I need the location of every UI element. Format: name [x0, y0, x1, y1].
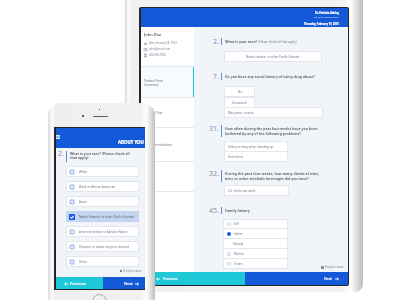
button[interactable]: Occasional	[224, 97, 255, 108]
staticText: Hispanic or Latino origin or descent	[79, 245, 130, 249]
staticText: Father	[234, 232, 243, 236]
staticText: Native Hawaiin or other Pacific Islander	[79, 215, 135, 219]
staticText: Marijuana, cocaine	[228, 111, 254, 115]
button[interactable]: Other	[66, 256, 139, 267]
staticText: What is your race?	[225, 39, 257, 44]
staticText: Medical Test	[144, 111, 163, 115]
staticText: 7.	[213, 72, 219, 82]
staticText: 2.	[213, 37, 219, 47]
button[interactable]: Mother	[223, 249, 288, 259]
staticText: 2.	[58, 149, 64, 159]
button[interactable]: Sometimes	[224, 151, 288, 162]
staticText: No	[238, 90, 242, 94]
staticText: Falling or dizzy when standing up	[228, 145, 274, 149]
staticText: Thursday, February 19, 2015	[304, 22, 339, 25]
staticText: Progress saved	[123, 269, 142, 273]
staticText: Previous	[70, 281, 87, 286]
button[interactable]: Native Hawaiin or other Pacific Islander	[66, 211, 139, 222]
staticText: How often during the past four weeks hav…	[225, 126, 318, 136]
button[interactable]: Previous	[56, 277, 103, 289]
staticText: Surgical Department	[314, 15, 339, 18]
staticText: Next	[124, 281, 133, 286]
button[interactable]: Sisters	[223, 259, 288, 269]
staticText: Obesity	[233, 242, 244, 246]
staticText: Progress saved	[325, 265, 344, 269]
button[interactable]: Open navigation menu	[56, 135, 60, 139]
staticText: Sisters	[234, 262, 243, 266]
button[interactable]: Notes	[141, 162, 194, 192]
staticText: Self	[234, 222, 239, 226]
button[interactable]: Patient Form Summary	[141, 67, 194, 98]
button[interactable]: No	[224, 86, 255, 97]
staticText: John@email.com	[149, 47, 171, 51]
staticText: Black or African American	[79, 185, 116, 189]
staticText: Next	[324, 276, 332, 281]
button[interactable]: White	[66, 166, 139, 177]
staticText: Asian	[79, 200, 87, 204]
staticText: Born January 28, 1953	[149, 41, 177, 45]
staticText: John Doe	[144, 32, 162, 37]
button[interactable]: Hispanic or Latino origin or descent	[66, 241, 139, 252]
staticText: 32.	[209, 169, 219, 179]
staticText: Recommendations	[144, 143, 173, 147]
staticText: Dr. Patricia Ashley	[315, 11, 339, 15]
staticText: White	[79, 170, 88, 174]
staticText: Mother	[234, 252, 245, 256]
button[interactable]: Father	[223, 229, 288, 239]
staticText: (Please check all that apply)	[258, 40, 297, 44]
button[interactable]: Self	[223, 219, 288, 229]
button[interactable]: Asian	[66, 196, 139, 207]
button[interactable]: Marijuana, cocaine	[224, 107, 323, 118]
button[interactable]: Recommendations	[141, 128, 194, 162]
staticText: Patient Form Summary	[144, 79, 164, 87]
button[interactable]: Next	[103, 277, 145, 289]
staticText: 404-555-5555	[149, 53, 167, 57]
staticText: Other	[79, 260, 88, 264]
button[interactable]: 2-5 drinks per week	[224, 185, 289, 196]
staticText: What is your race? (Please check all tha…	[70, 151, 130, 160]
button[interactable]: Black or African American	[66, 181, 139, 192]
staticText: Occasional	[232, 101, 247, 105]
staticText: 45.	[209, 206, 219, 216]
staticText: During the past four weeks, how many dri…	[225, 171, 320, 181]
button[interactable]: Previous	[141, 272, 245, 285]
staticText: 31.	[209, 124, 219, 134]
staticText: Native Hawaiin or other Pacific Islander	[246, 55, 300, 59]
staticText: American Indian or Alaskan Native	[79, 230, 128, 234]
button[interactable]: Medical Test	[141, 98, 194, 128]
button[interactable]: Falling or dizzy when standing up	[224, 141, 288, 152]
button[interactable]: Next	[245, 272, 348, 285]
staticText: Family history	[225, 208, 250, 213]
button[interactable]: American Indian or Alaskan Native	[66, 226, 139, 237]
staticText: ABOUT YOU	[118, 139, 144, 145]
staticText: Sometimes	[228, 155, 244, 159]
button[interactable]: Native Hawaiin or other Pacific Islander	[224, 51, 322, 62]
staticText: Notes	[144, 175, 153, 179]
staticText: 2-5 drinks per week	[228, 189, 256, 193]
staticText: Previous	[163, 276, 178, 281]
staticText: Do you have any social history of using …	[225, 74, 315, 79]
